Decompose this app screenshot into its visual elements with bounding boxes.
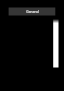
- staticText: General: [26, 9, 39, 13]
- button[interactable]: Scroll indicator: [53, 19, 58, 68]
- button[interactable]: General: [9, 8, 56, 16]
